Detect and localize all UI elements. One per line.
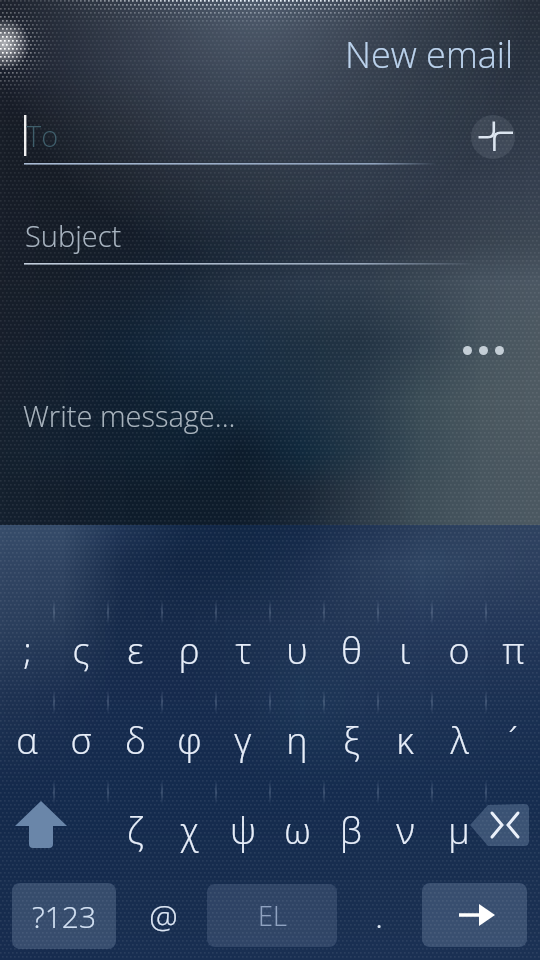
staticText: ν <box>396 806 415 855</box>
button[interactable]: ψ <box>216 785 270 875</box>
button[interactable]: ξ <box>324 695 378 785</box>
button[interactable]: ?123 <box>12 883 116 949</box>
staticText: . <box>375 894 383 938</box>
button[interactable]: υ <box>270 605 324 695</box>
staticText: To <box>26 116 59 155</box>
staticText: τ <box>235 626 252 675</box>
button[interactable]: ς <box>54 605 108 695</box>
button[interactable]: More options <box>463 339 504 361</box>
staticText: ζ <box>127 806 144 855</box>
staticText: ρ <box>178 626 200 675</box>
staticText: υ <box>286 626 308 675</box>
staticText: κ <box>396 716 414 765</box>
button[interactable]: ο <box>432 605 486 695</box>
staticText: μ <box>448 806 470 855</box>
button[interactable]: ζ <box>108 785 162 875</box>
button[interactable]: ε <box>108 605 162 695</box>
button[interactable]: δ <box>108 695 162 785</box>
button[interactable]: λ <box>432 695 486 785</box>
staticText: β <box>340 806 362 855</box>
button[interactable]: Space, EL layout <box>207 884 337 947</box>
button[interactable]: ν <box>378 785 432 875</box>
button[interactable]: φ <box>162 695 216 785</box>
button[interactable]: ω <box>270 785 324 875</box>
button[interactable]: New email <box>345 30 514 79</box>
staticText: φ <box>177 716 202 765</box>
staticText: γ <box>234 716 252 765</box>
button[interactable]: γ <box>216 695 270 785</box>
button[interactable]: Enter <box>422 883 527 947</box>
button[interactable]: . <box>352 883 406 949</box>
button[interactable]: ρ <box>162 605 216 695</box>
button[interactable]: Subject <box>24 213 476 265</box>
staticText: ο <box>448 626 470 675</box>
staticText: EL <box>258 897 287 934</box>
button[interactable]: Backspace <box>464 785 540 875</box>
staticText: ω <box>284 806 311 855</box>
button[interactable]: σ <box>54 695 108 785</box>
button[interactable]: μ <box>432 785 486 875</box>
button[interactable]: Write message... <box>23 396 236 435</box>
staticText: @ <box>149 894 178 938</box>
button[interactable]: ´ <box>486 695 540 785</box>
button[interactable]: α <box>0 695 54 785</box>
button[interactable]: η <box>270 695 324 785</box>
staticText: θ <box>341 626 362 675</box>
staticText: Subject <box>25 216 122 255</box>
button[interactable]: τ <box>216 605 270 695</box>
staticText: ?123 <box>32 896 96 937</box>
staticText: ψ <box>230 806 256 855</box>
staticText: α <box>16 716 38 765</box>
staticText: π <box>502 626 525 675</box>
button[interactable]: ; <box>0 605 54 695</box>
staticText: ε <box>127 626 144 675</box>
staticText: ´ <box>508 716 518 765</box>
button[interactable]: β <box>324 785 378 875</box>
button[interactable]: Shift <box>0 785 90 875</box>
button[interactable]: @ <box>130 883 196 949</box>
staticText: χ <box>180 806 199 855</box>
staticText: ; <box>23 626 32 675</box>
staticText: η <box>286 716 308 765</box>
button[interactable]: π <box>486 605 540 695</box>
staticText: ς <box>72 626 90 675</box>
button[interactable]: κ <box>378 695 432 785</box>
button[interactable]: To <box>24 113 436 165</box>
staticText: ξ <box>343 716 360 765</box>
button[interactable]: ι <box>378 605 432 695</box>
button[interactable]: χ <box>162 785 216 875</box>
staticText: δ <box>125 716 146 765</box>
staticText: λ <box>450 716 469 765</box>
staticText: σ <box>70 716 92 765</box>
button[interactable]: Add recipient <box>471 115 515 159</box>
staticText: ι <box>399 626 411 675</box>
button[interactable]: θ <box>324 605 378 695</box>
